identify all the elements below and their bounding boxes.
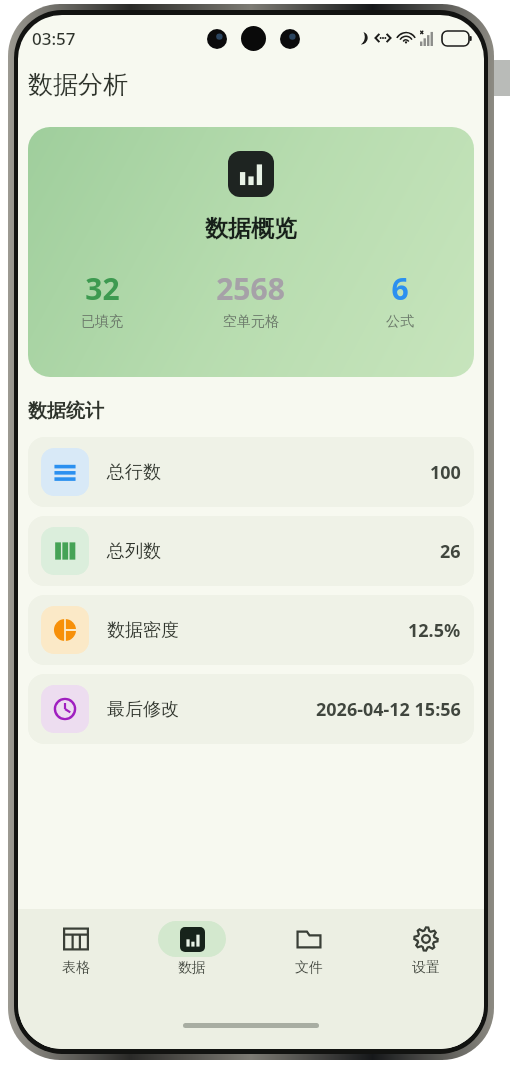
button[interactable]: 表格 xyxy=(18,921,134,1009)
staticText: 数据密度 xyxy=(107,619,179,642)
staticText: 数据分析 xyxy=(28,69,128,100)
button[interactable]: 总列数 xyxy=(28,516,474,586)
staticText: 文件 xyxy=(295,959,323,977)
staticText: 表格 xyxy=(62,959,90,977)
staticText: 总列数 xyxy=(107,540,161,563)
staticText: 6 xyxy=(391,268,409,309)
staticText: 数据统计 xyxy=(28,399,104,423)
staticText: 数据概览 xyxy=(205,214,297,243)
staticText: 12.5% xyxy=(408,618,461,643)
staticText: 数据 xyxy=(178,959,206,977)
staticText: 2026-04-12 15:56 xyxy=(316,697,461,722)
staticText: 设置 xyxy=(412,959,440,977)
other: 表格 xyxy=(63,926,89,952)
button[interactable]: 总行数 xyxy=(28,437,474,507)
other: 文件 xyxy=(296,926,322,952)
staticText: 空单元格 xyxy=(223,313,279,331)
staticText: 100 xyxy=(430,460,461,485)
staticText: 32 xyxy=(85,268,120,309)
button[interactable]: 设置 xyxy=(367,921,484,1009)
button[interactable]: 数据密度 xyxy=(28,595,474,665)
staticText: 总行数 xyxy=(107,461,161,484)
button[interactable]: 数据 xyxy=(134,921,250,1009)
staticText: 2568 xyxy=(216,268,285,309)
staticText: 最后修改 xyxy=(107,698,179,721)
button[interactable]: 最后修改 xyxy=(28,674,474,744)
button[interactable]: 文件 xyxy=(250,921,367,1009)
button[interactable]: 数据概览 xyxy=(28,127,474,377)
staticText: 26 xyxy=(440,539,461,564)
staticText: 03:57 xyxy=(32,27,76,50)
other: 设置 xyxy=(413,926,439,952)
staticText: 公式 xyxy=(386,313,414,331)
staticText: 已填充 xyxy=(81,313,123,331)
